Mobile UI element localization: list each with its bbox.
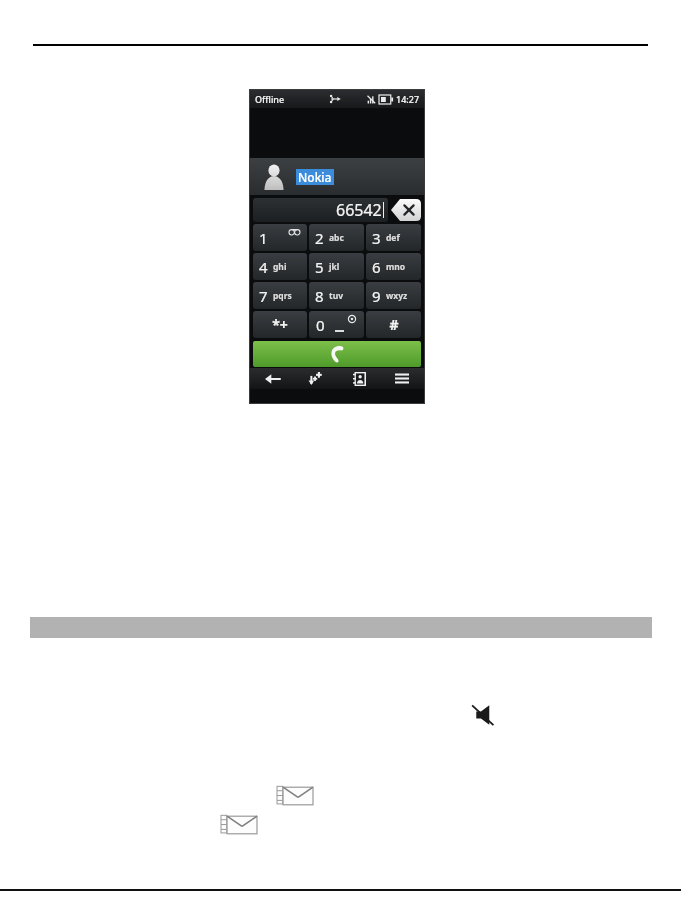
button[interactable]: 6	[366, 253, 421, 280]
button[interactable]: *+	[253, 311, 307, 338]
button[interactable]: 7	[253, 282, 307, 309]
button[interactable]: Menu	[381, 368, 423, 389]
staticText: 7	[259, 286, 268, 306]
staticText: 4	[259, 257, 268, 277]
button[interactable]: Backspace	[391, 199, 421, 221]
other: Message	[277, 785, 313, 807]
button[interactable]: 5	[309, 253, 364, 280]
button[interactable]: 3	[366, 224, 421, 251]
button[interactable]: Call	[253, 341, 421, 367]
button[interactable]: 1	[253, 224, 307, 251]
button[interactable]: Nokia	[250, 158, 424, 195]
staticText: 2	[315, 228, 324, 248]
staticText: 0	[316, 315, 325, 335]
button[interactable]: 66542	[253, 198, 388, 222]
other: Silent	[469, 704, 495, 726]
staticText: Offline	[255, 93, 285, 105]
staticText: abc	[329, 232, 344, 244]
staticText: def	[386, 232, 400, 244]
staticText: 1	[259, 228, 268, 248]
staticText: 8	[315, 286, 324, 306]
staticText: 14:27	[396, 93, 420, 105]
button[interactable]: 2	[309, 224, 364, 251]
staticText: wxyz	[386, 290, 408, 302]
button[interactable]: Contacts	[338, 368, 380, 389]
staticText: pqrs	[273, 290, 292, 302]
staticText: Nokia	[298, 169, 332, 185]
staticText: ghi	[273, 261, 287, 273]
button[interactable]: Add contact	[294, 368, 336, 389]
staticText: 66542	[336, 199, 382, 221]
button[interactable]: #	[366, 311, 421, 338]
button[interactable]: 9	[366, 282, 421, 309]
staticText: *+	[272, 315, 288, 334]
staticText: 3	[372, 228, 381, 248]
staticText: mno	[386, 261, 406, 273]
staticText: #	[389, 315, 399, 334]
staticText: jkl	[329, 261, 340, 273]
button[interactable]: Back	[251, 368, 293, 389]
staticText: 9	[372, 286, 381, 306]
button[interactable]: 4	[253, 253, 307, 280]
staticText: 6	[372, 257, 381, 277]
button[interactable]: 8	[309, 282, 364, 309]
button[interactable]: 0	[309, 311, 364, 338]
staticText: tuv	[329, 290, 344, 302]
staticText: 5	[315, 257, 324, 277]
other: Message	[221, 814, 257, 836]
